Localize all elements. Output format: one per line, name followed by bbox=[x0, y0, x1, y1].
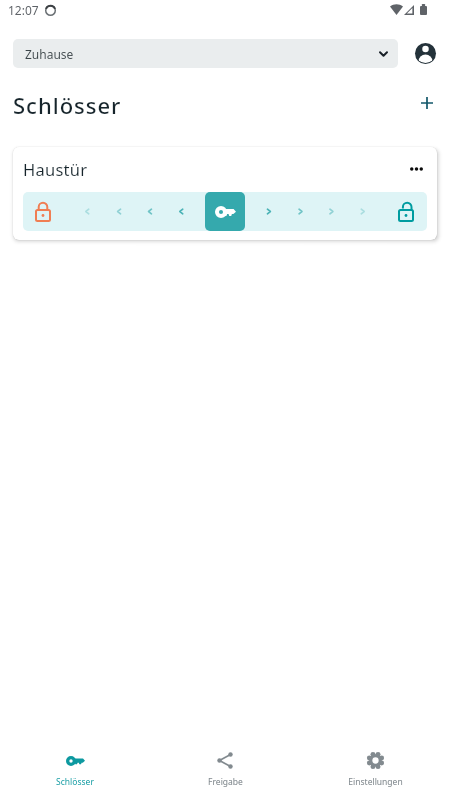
button[interactable]: Account bbox=[410, 39, 440, 68]
button[interactable]: Freigabe bbox=[150, 740, 300, 800]
staticText: Zuhause bbox=[25, 46, 74, 62]
staticText: Einstellungen bbox=[348, 776, 403, 788]
button[interactable]: Unlock bbox=[205, 192, 245, 231]
staticText: Freigabe bbox=[208, 776, 243, 788]
button[interactable]: Add bbox=[410, 86, 444, 120]
button[interactable]: Schlösser bbox=[0, 740, 150, 800]
staticText: Haustür bbox=[23, 158, 88, 180]
button[interactable]: Zuhause bbox=[13, 39, 398, 68]
button[interactable]: More options bbox=[398, 151, 434, 187]
staticText: Schlösser bbox=[56, 776, 94, 788]
staticText: Schlösser bbox=[13, 90, 122, 120]
button[interactable]: Einstellungen bbox=[300, 740, 450, 800]
staticText: 12:07 bbox=[8, 2, 39, 18]
